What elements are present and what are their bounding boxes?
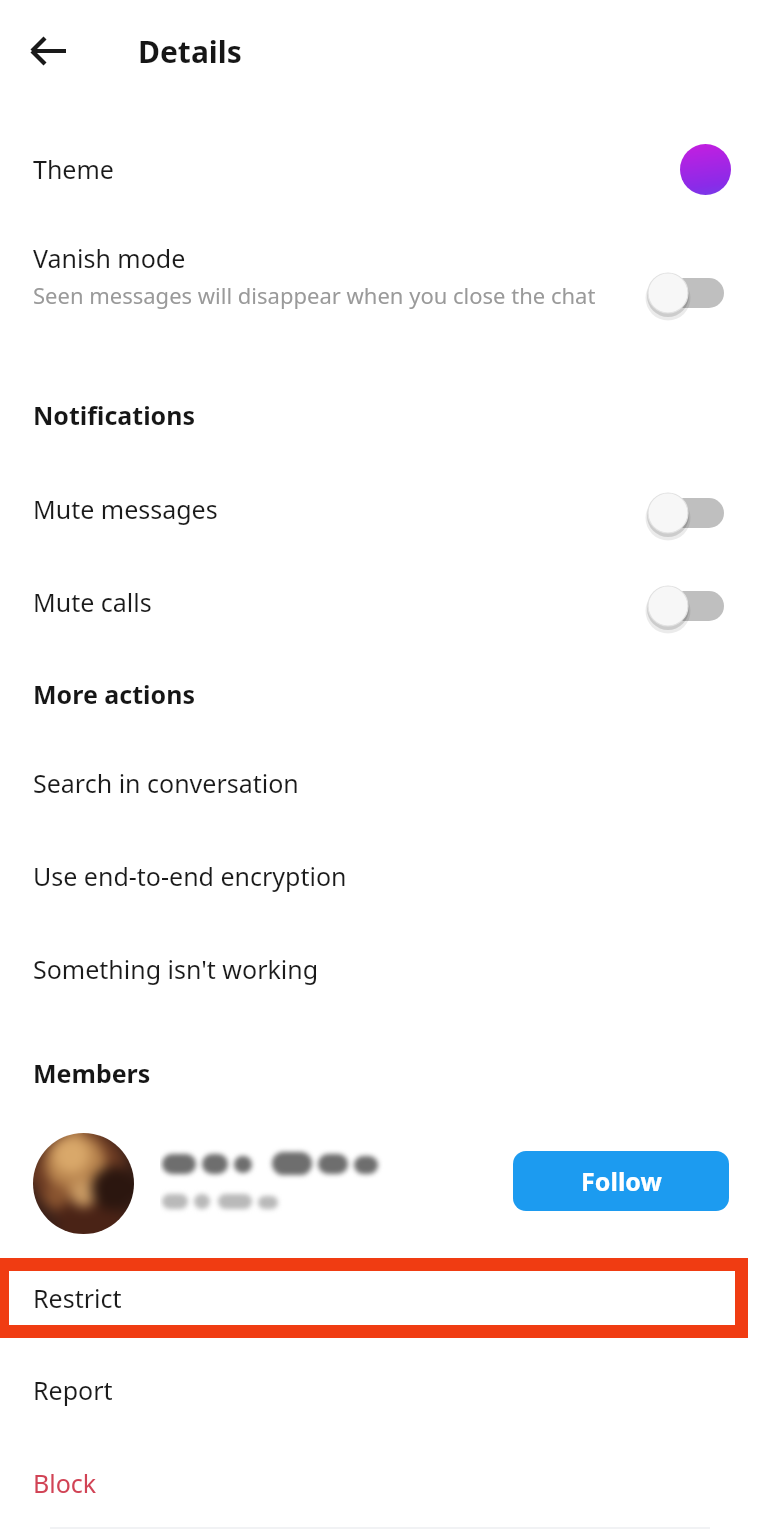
button[interactable]: Block	[0, 1443, 760, 1523]
button[interactable]: Use end-to-end encryption	[0, 836, 760, 916]
staticText: Notifications	[33, 398, 196, 432]
button[interactable]: Mute messages	[644, 484, 736, 542]
button[interactable]: Mute messages	[0, 466, 760, 552]
button[interactable]: Vanish mode	[644, 264, 736, 322]
staticText: Follow	[581, 1164, 662, 1198]
staticText: Use end-to-end encryption	[33, 859, 347, 893]
button[interactable]: Vanish mode	[0, 228, 760, 354]
button[interactable]: Theme colour	[672, 136, 738, 202]
button[interactable]: Mute calls	[0, 559, 760, 645]
button[interactable]: Something isn't working	[0, 929, 760, 1009]
button[interactable]: Follow	[513, 1151, 729, 1211]
staticText: Details	[138, 31, 242, 72]
button[interactable]: Search in conversation	[0, 743, 760, 823]
staticText: Restrict	[33, 1281, 122, 1315]
button[interactable]: Theme	[0, 124, 760, 214]
button[interactable]: Back	[20, 22, 78, 80]
staticText: Something isn't working	[33, 952, 319, 986]
button[interactable]: Mute calls	[644, 577, 736, 635]
button[interactable]	[0, 1120, 760, 1248]
staticText: Report	[33, 1373, 113, 1407]
staticText: Search in conversation	[33, 766, 299, 800]
staticText: Vanish mode	[33, 241, 186, 275]
staticText: Mute calls	[33, 585, 152, 619]
staticText: Seen messages will disappear when you cl…	[33, 280, 596, 310]
button[interactable]: Restrict	[0, 1258, 760, 1338]
staticText: Mute messages	[33, 492, 218, 526]
staticText: Theme	[33, 152, 114, 186]
staticText: More actions	[33, 677, 195, 711]
button[interactable]: Report	[0, 1350, 760, 1430]
staticText: Members	[33, 1056, 151, 1090]
staticText: Block	[33, 1466, 97, 1500]
